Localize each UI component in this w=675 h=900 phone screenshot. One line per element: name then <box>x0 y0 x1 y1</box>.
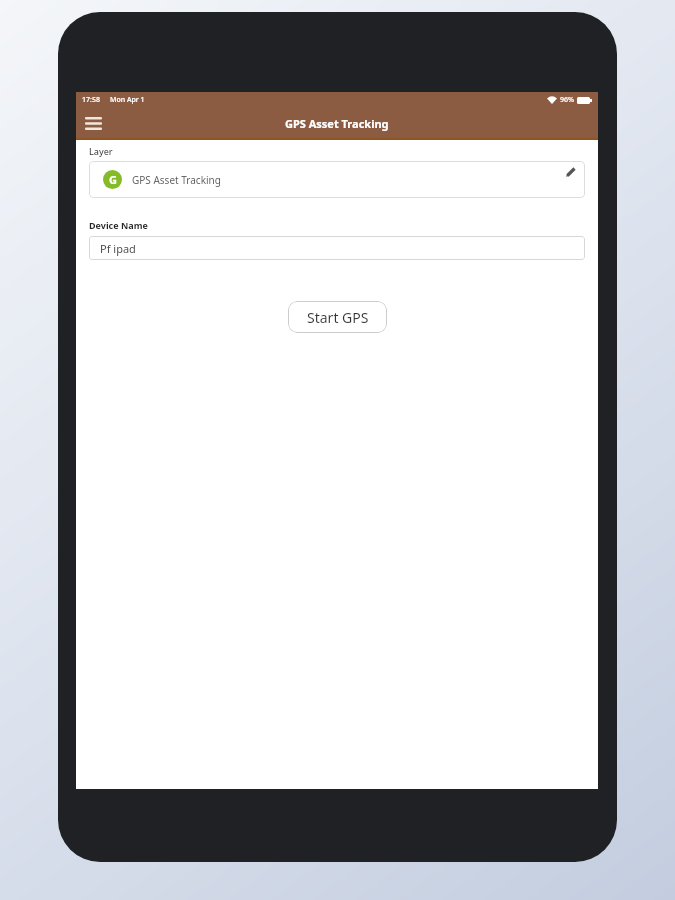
staticText: G <box>109 172 117 187</box>
button[interactable]: Start GPS <box>288 301 387 333</box>
staticText: GPS Asset Tracking <box>132 173 221 187</box>
button[interactable]: Pf ipad <box>89 236 585 260</box>
staticText: Pf ipad <box>100 241 136 256</box>
staticText: GPS Asset Tracking <box>285 116 389 131</box>
staticText: 96% <box>560 95 574 105</box>
staticText: Device Name <box>89 219 148 231</box>
staticText: Layer <box>89 145 113 157</box>
staticText: 17:58 <box>82 95 100 105</box>
staticText: Mon Apr 1 <box>110 95 145 105</box>
button[interactable] <box>81 111 105 135</box>
button[interactable]: G <box>89 161 585 198</box>
staticText: Start GPS <box>307 308 369 327</box>
